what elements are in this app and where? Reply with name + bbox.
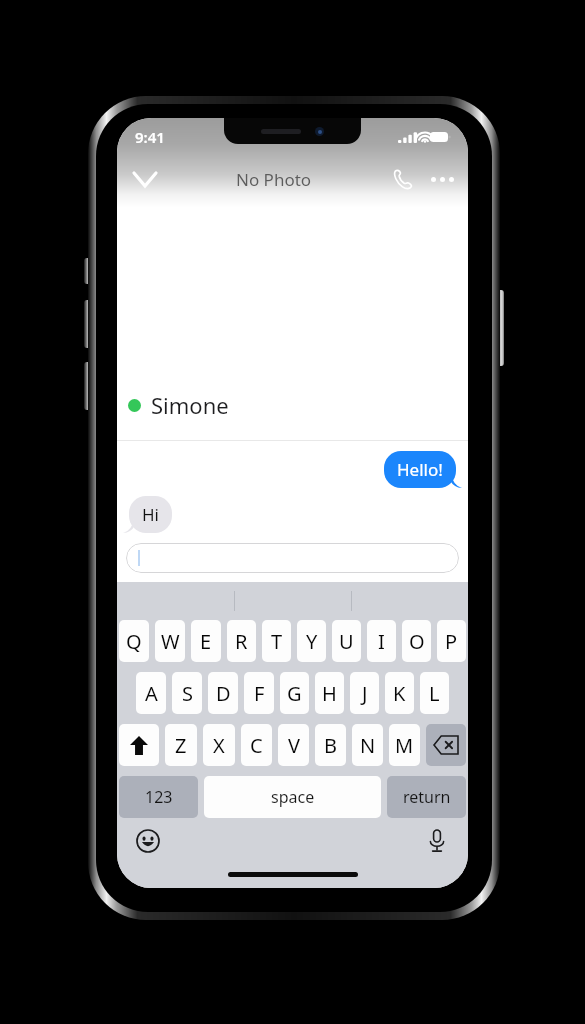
button[interactable]: T <box>262 620 291 662</box>
staticText: S <box>182 680 193 707</box>
button[interactable]: Shift <box>119 724 159 766</box>
staticText: K <box>393 680 406 707</box>
button[interactable]: 123 <box>119 776 198 818</box>
button[interactable]: Call <box>382 159 422 199</box>
button[interactable]: Hello! <box>397 458 443 481</box>
button[interactable]: J <box>350 672 379 714</box>
button[interactable]: Y <box>297 620 326 662</box>
staticText: Y <box>306 628 318 655</box>
button[interactable]: Emoji <box>131 824 165 858</box>
staticText: G <box>287 680 302 707</box>
button[interactable]: V <box>278 724 309 766</box>
staticText: E <box>200 628 212 655</box>
button[interactable]: K <box>385 672 414 714</box>
button[interactable]: Collapse <box>123 157 167 201</box>
button[interactable] <box>126 543 459 573</box>
button[interactable]: W <box>155 620 185 662</box>
button[interactable]: Backspace <box>426 724 466 766</box>
staticText: Hi <box>142 503 159 526</box>
staticText: space <box>271 786 315 808</box>
button[interactable]: S <box>172 672 202 714</box>
staticText: P <box>445 628 458 655</box>
button[interactable]: O <box>402 620 431 662</box>
button[interactable]: E <box>191 620 221 662</box>
staticText: No Photo <box>236 168 312 191</box>
staticText: H <box>322 680 337 707</box>
staticText: N <box>360 732 376 759</box>
staticText: V <box>288 732 300 759</box>
button[interactable]: R <box>227 620 256 662</box>
staticText: L <box>429 680 440 707</box>
staticText: Q <box>126 628 142 655</box>
staticText: O <box>409 628 425 655</box>
button[interactable]: Z <box>165 724 197 766</box>
button[interactable]: N <box>352 724 383 766</box>
button[interactable]: U <box>332 620 361 662</box>
button[interactable]: Q <box>119 620 149 662</box>
staticText: 123 <box>145 786 173 808</box>
button[interactable]: More options <box>422 159 462 199</box>
button[interactable]: G <box>280 672 309 714</box>
button[interactable]: return <box>387 776 466 818</box>
button[interactable]: B <box>315 724 346 766</box>
staticText: J <box>362 680 368 707</box>
button[interactable]: A <box>136 672 166 714</box>
staticText: I <box>378 628 385 655</box>
staticText: W <box>161 628 180 655</box>
button[interactable]: Dictation <box>420 824 454 858</box>
staticText: D <box>216 680 231 707</box>
button[interactable]: P <box>437 620 466 662</box>
staticText: Z <box>175 732 187 759</box>
button[interactable]: M <box>389 724 420 766</box>
button[interactable]: space <box>204 776 381 818</box>
staticText: Simone <box>151 390 229 420</box>
staticText: X <box>213 732 225 759</box>
button[interactable]: D <box>208 672 238 714</box>
staticText: C <box>250 732 263 759</box>
staticText: U <box>339 628 354 655</box>
button[interactable]: Hi <box>142 503 159 526</box>
button[interactable]: C <box>241 724 272 766</box>
staticText: Hello! <box>397 458 443 481</box>
button[interactable]: H <box>315 672 344 714</box>
button[interactable]: I <box>367 620 396 662</box>
button[interactable]: X <box>203 724 235 766</box>
button[interactable]: L <box>420 672 449 714</box>
staticText: R <box>235 628 248 655</box>
button[interactable]: F <box>244 672 274 714</box>
staticText: M <box>395 732 414 759</box>
staticText: 9:41 <box>135 127 165 147</box>
staticText: B <box>324 732 337 759</box>
staticText: T <box>271 628 283 655</box>
staticText: F <box>254 680 265 707</box>
staticText: A <box>145 680 158 707</box>
staticText: return <box>403 786 451 808</box>
